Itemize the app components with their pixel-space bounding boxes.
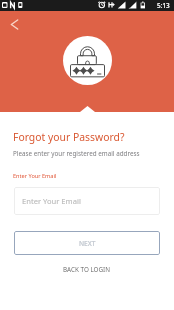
staticText: Forgot your Password? [13,130,125,144]
staticText: Enter Your Email [13,172,57,180]
button[interactable]: Enter Your Email [14,187,160,215]
staticText: Please enter your registered email addre… [13,149,140,158]
button[interactable]: Back [5,15,24,34]
staticText: NEXT [79,239,96,248]
staticText: BACK TO LOGIN [63,265,111,274]
staticText: 5:13 [157,1,170,10]
button[interactable]: NEXT [14,231,160,255]
button[interactable]: BACK TO LOGIN [63,265,111,274]
staticText: Enter Your Email [22,196,81,206]
